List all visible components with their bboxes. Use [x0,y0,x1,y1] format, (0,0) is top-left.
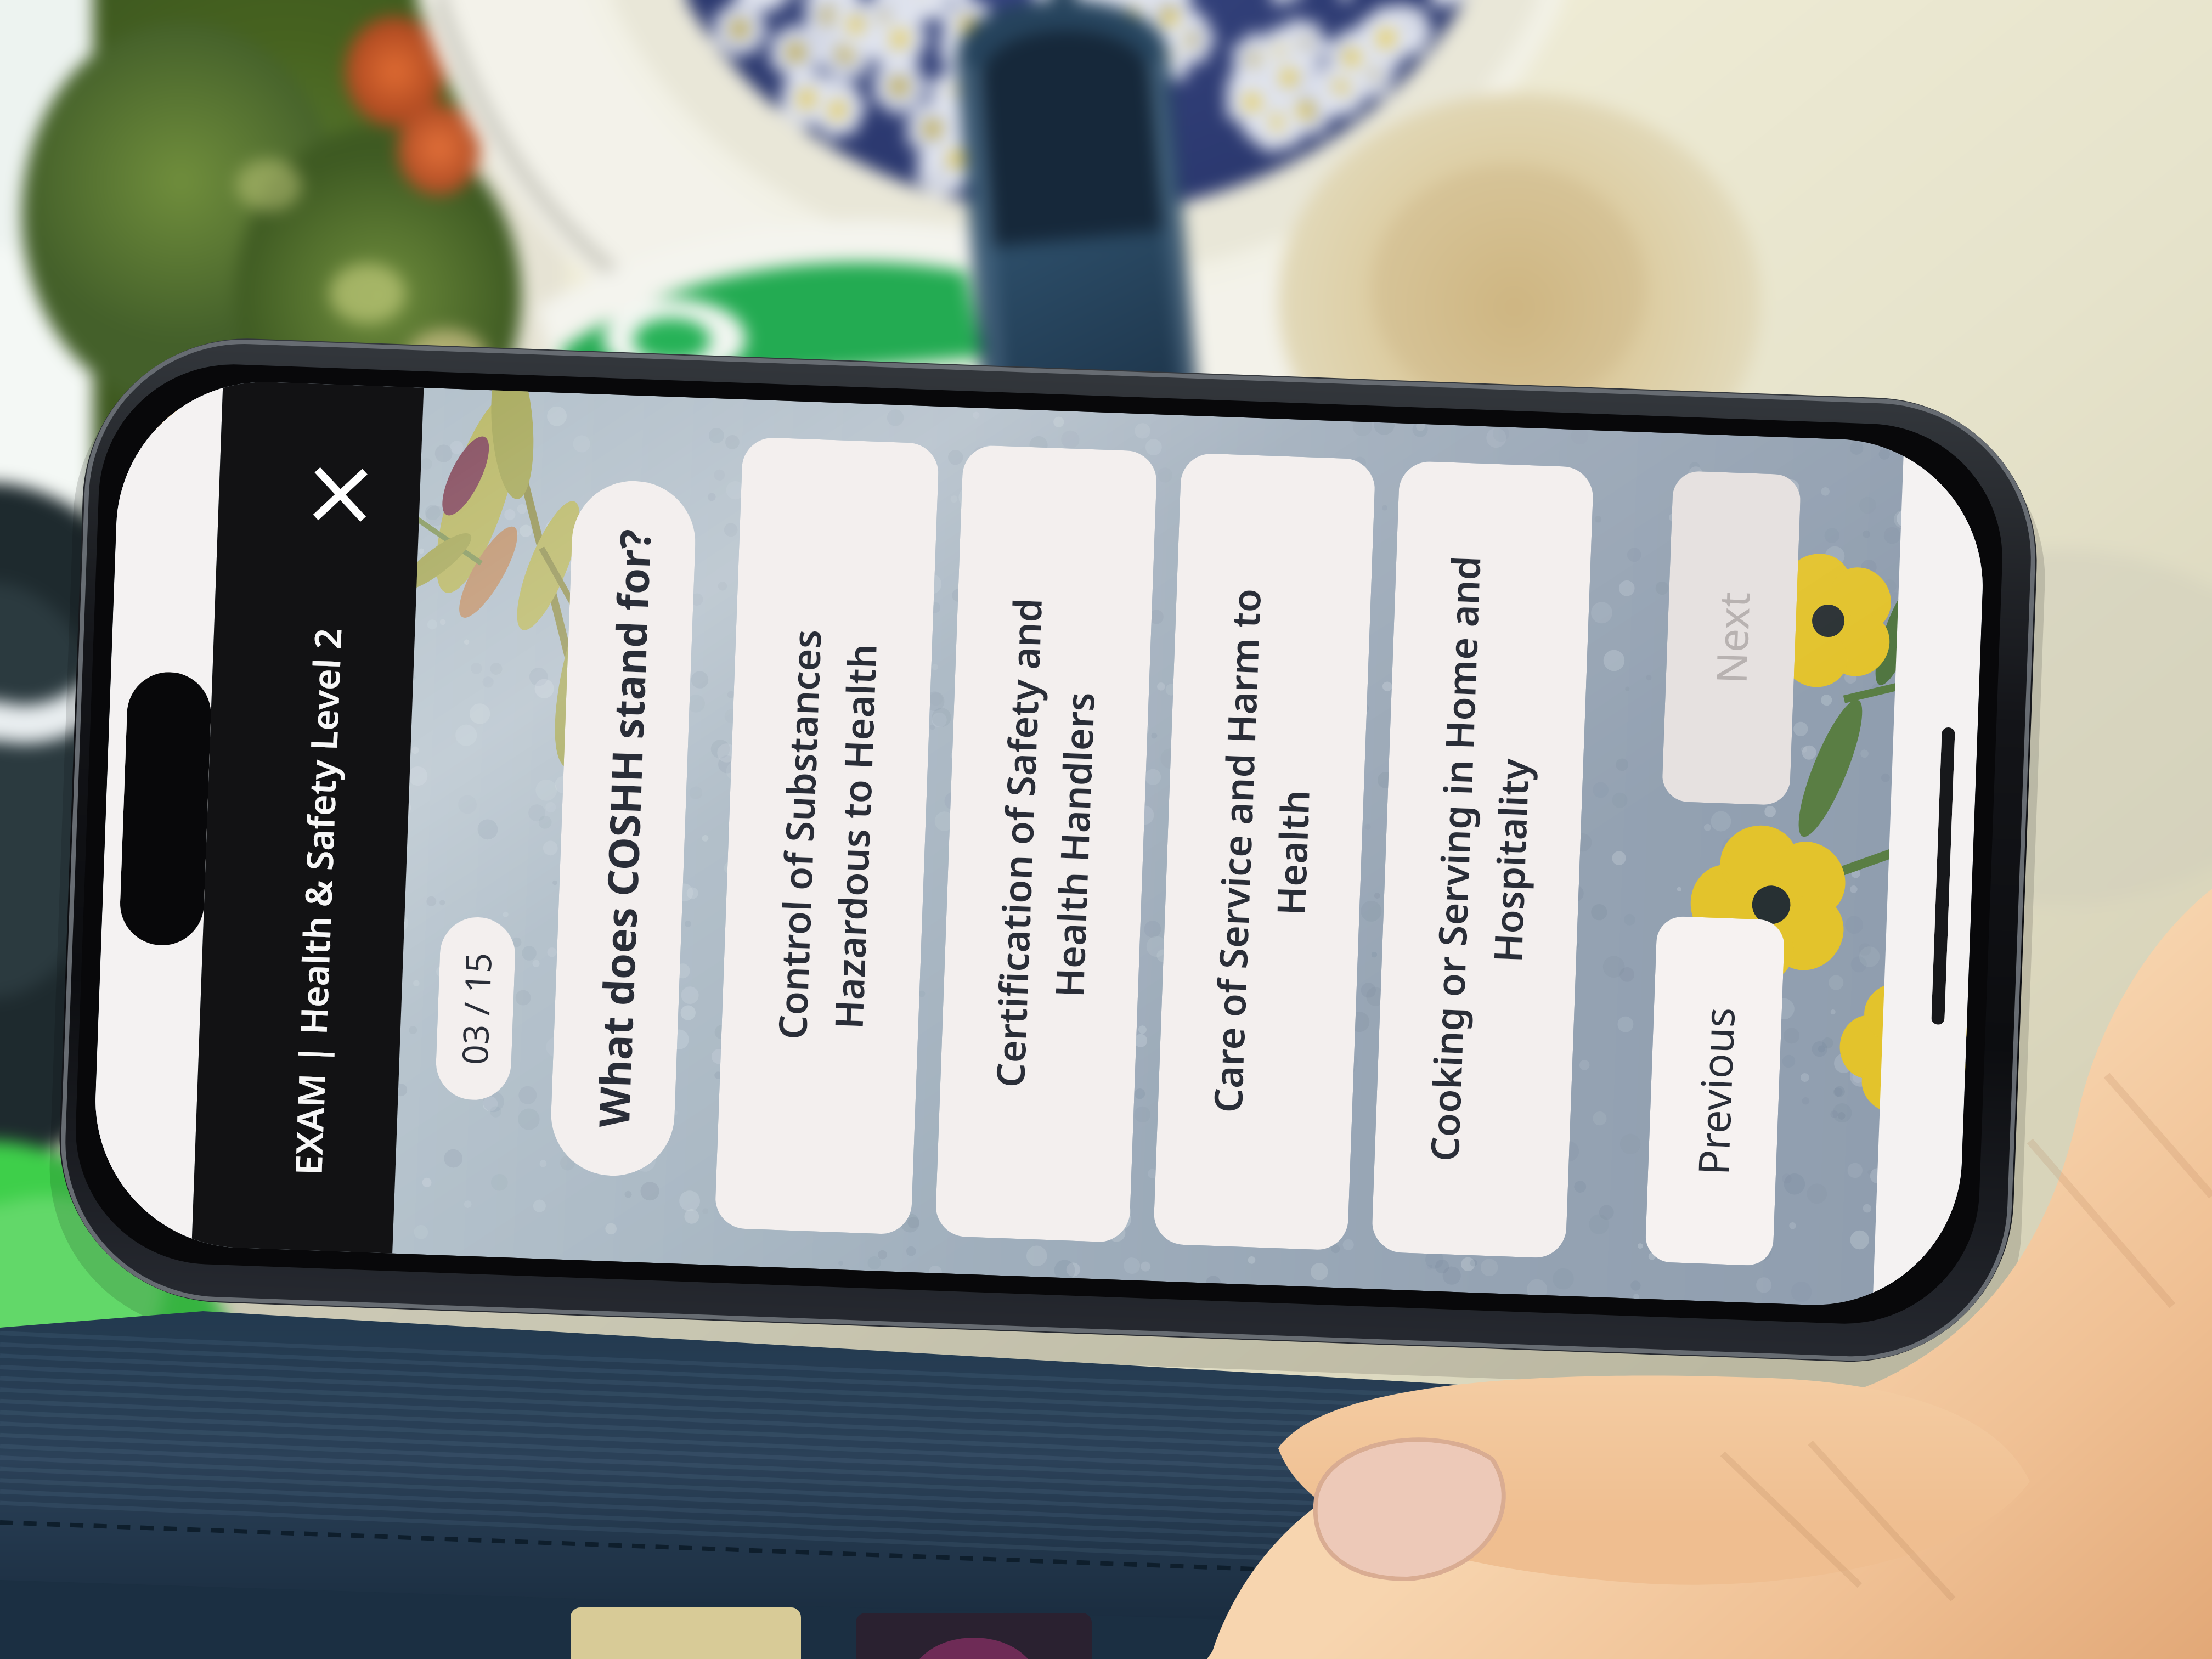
button[interactable]: Cooking or Serving in Home and Hospitali… [1371,461,1594,1259]
staticText: Previous [1684,1006,1747,1176]
staticText: 03 / 15 [450,952,502,1066]
button[interactable]: Previous [1645,916,1785,1266]
button[interactable]: Control of Substances Hazardous to Healt… [714,437,939,1235]
button[interactable]: Close [290,444,390,545]
staticText: EXAM | Health & Safety Level 2 [283,627,352,1176]
button[interactable]: 03 / 15 [435,916,516,1101]
staticText: Next [1701,591,1762,685]
staticText: Control of Substances Hazardous to Healt… [765,628,889,1043]
button[interactable]: Certification of Safety and Health Handl… [935,445,1158,1243]
staticText: Certification of Safety and Health Handl… [983,597,1109,1091]
staticText: Care of Service and Harm to Health [1201,587,1328,1116]
button[interactable]: Next [1662,470,1801,806]
button[interactable]: Care of Service and Harm to Health [1153,453,1376,1251]
staticText: What does COSHH stand for? [584,528,663,1129]
staticText: Cooking or Serving in Home and Hospitali… [1417,555,1548,1164]
